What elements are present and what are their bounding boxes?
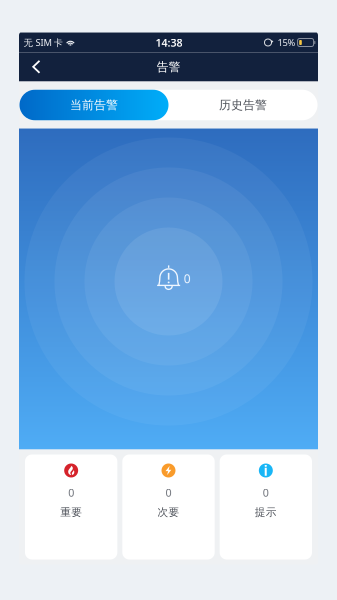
staticText: 0 (263, 485, 269, 500)
button[interactable]: 0 (25, 454, 117, 559)
button[interactable]: 0 (122, 454, 215, 559)
button[interactable]: 当前告警 (19, 90, 168, 120)
staticText: 15% (277, 36, 295, 49)
staticText: 14:38 (155, 35, 182, 50)
staticText: 当前告警 (70, 98, 118, 112)
staticText: 历史告警 (219, 98, 267, 112)
staticText: 无 SIM 卡 (23, 36, 62, 49)
staticText: 0 (165, 485, 171, 500)
staticText: 次要 (157, 506, 179, 519)
staticText: i (264, 462, 268, 479)
button[interactable]: 返回 (19, 53, 51, 81)
staticText: 提示 (255, 506, 277, 519)
staticText: 0 (68, 485, 74, 500)
button[interactable]: 历史告警 (168, 90, 317, 120)
button[interactable]: i (220, 454, 312, 559)
staticText: 告警 (156, 60, 180, 74)
staticText: 0 (184, 270, 191, 286)
staticText: 重要 (60, 506, 82, 519)
